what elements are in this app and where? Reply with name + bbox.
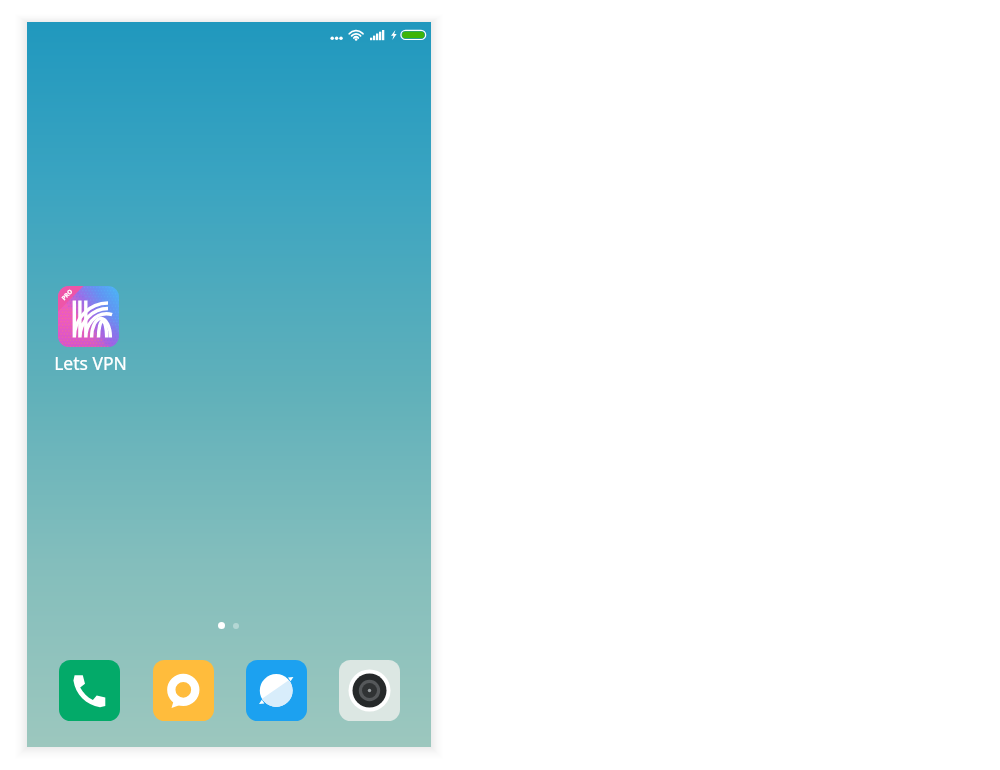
staticText: PRO	[60, 287, 75, 302]
button[interactable]: PRO	[42, 286, 134, 375]
button[interactable]: Browser	[246, 660, 307, 721]
button[interactable]: Camera	[339, 660, 400, 721]
staticText: Lets VPN	[54, 351, 127, 375]
button[interactable]: Phone	[59, 660, 120, 721]
button[interactable]: Messages	[153, 660, 214, 721]
